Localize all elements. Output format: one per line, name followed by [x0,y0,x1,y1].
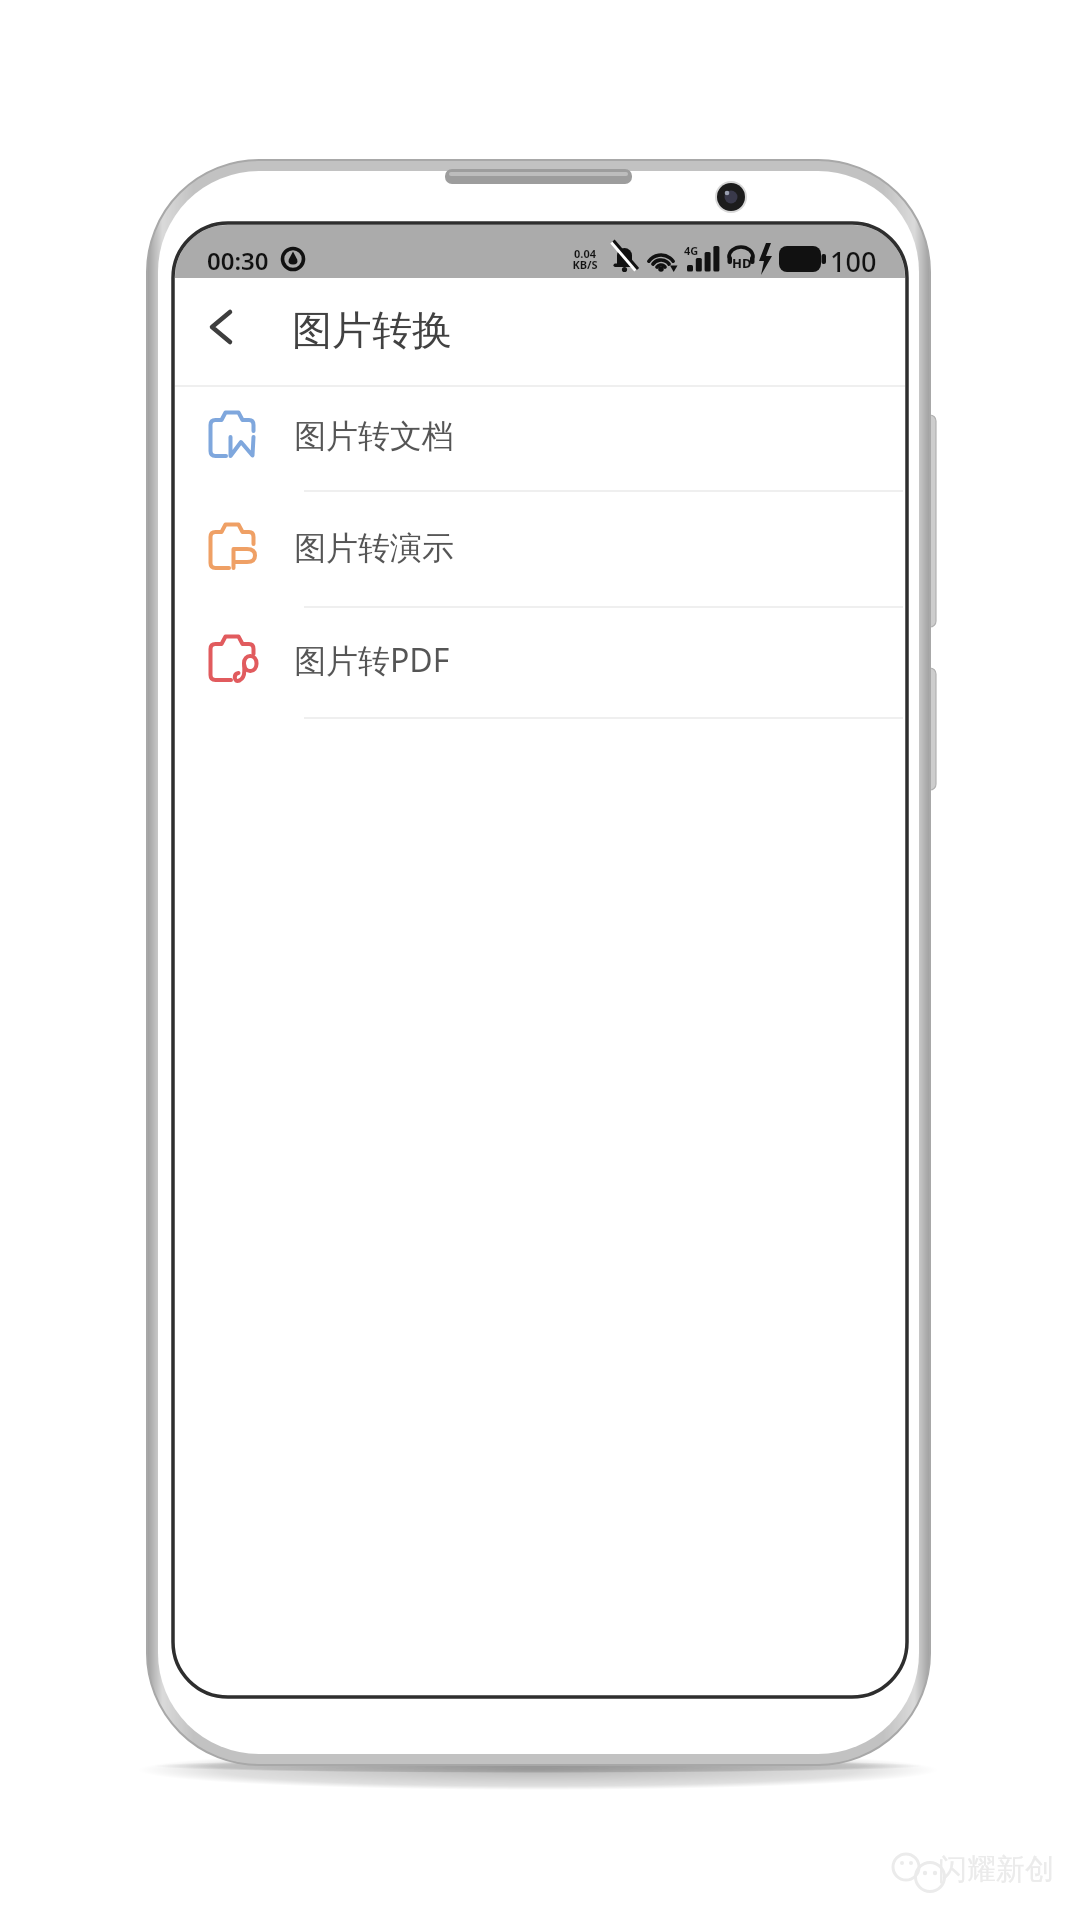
button[interactable]: 图片转文档 [175,380,905,492]
staticText: 0.04 KB/S [572,246,598,273]
staticText: 图片转PDF [294,638,450,682]
staticText: 00:30 [207,244,269,274]
button[interactable]: 图片转演示 [175,492,905,604]
staticText: 图片转换 [292,305,452,355]
staticText: 图片转文档 [294,416,454,456]
staticText: HD [732,254,752,272]
button[interactable]: 图片转PDF [175,604,905,716]
staticText: 4G [684,243,699,258]
button[interactable] [192,300,248,356]
staticText: 图片转演示 [294,528,454,568]
staticText: 100 [830,243,877,275]
staticText: 闪耀新创 [938,1851,1054,1888]
